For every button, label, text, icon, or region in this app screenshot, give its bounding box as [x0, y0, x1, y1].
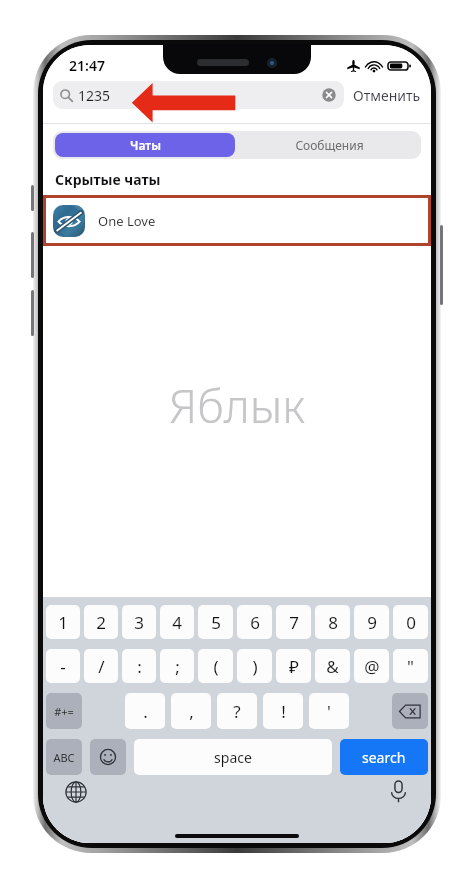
staticText: 7 — [289, 611, 299, 634]
staticText: 9 — [367, 611, 377, 634]
button[interactable]: search — [340, 739, 428, 775]
button[interactable]: . — [125, 693, 165, 729]
staticText: @ — [364, 655, 380, 678]
button[interactable]: ? — [217, 693, 257, 729]
button[interactable]: / — [84, 649, 118, 683]
button[interactable]: 8 — [315, 605, 350, 639]
staticText: ₽ — [289, 655, 299, 678]
staticText: ; — [175, 655, 180, 678]
staticText: ( — [213, 655, 219, 678]
button[interactable]: ( — [198, 649, 233, 683]
button[interactable]: Dictation — [390, 780, 407, 803]
staticText: Отменить — [353, 86, 421, 105]
button[interactable]: ₽ — [276, 649, 311, 683]
button[interactable]: 7 — [276, 605, 311, 639]
button[interactable]: ! — [263, 693, 303, 729]
button[interactable]: 5 — [198, 605, 233, 639]
staticText: ' — [327, 700, 331, 723]
staticText: Сообщения — [295, 137, 364, 153]
staticText: Скрытые чаты — [55, 170, 161, 189]
button[interactable]: 3 — [122, 605, 156, 639]
button[interactable]: 1 — [46, 605, 80, 639]
staticText: Чаты — [130, 137, 161, 153]
button[interactable]: Backspace — [392, 693, 428, 729]
staticText: ) — [252, 655, 258, 678]
staticText: Яблык — [169, 374, 306, 437]
button[interactable]: 4 — [160, 605, 194, 639]
button[interactable]: Чаты — [55, 133, 235, 157]
button[interactable]: Сообщения — [237, 131, 421, 159]
staticText: ABC — [53, 750, 75, 765]
staticText: search — [362, 748, 406, 767]
staticText: / — [98, 655, 105, 678]
staticText: " — [407, 655, 414, 678]
staticText: 1 — [58, 611, 68, 634]
staticText: , — [189, 700, 194, 723]
button[interactable]: Clear — [321, 87, 337, 103]
button[interactable]: Emoji — [90, 739, 126, 775]
button[interactable]: space — [134, 739, 332, 775]
button[interactable]: & — [315, 649, 350, 683]
staticText: #+= — [54, 704, 74, 719]
staticText: One Love — [98, 212, 156, 230]
button[interactable]: #+= — [46, 693, 82, 729]
button[interactable]: ' — [309, 693, 349, 729]
staticText: - — [60, 655, 66, 678]
staticText: 3 — [134, 611, 144, 634]
staticText: space — [214, 748, 252, 767]
button[interactable]: " — [393, 649, 428, 683]
button[interactable]: One Love — [53, 195, 431, 246]
button[interactable]: Отменить — [353, 86, 421, 105]
button[interactable]: Language — [65, 781, 87, 803]
staticText: 0 — [406, 611, 416, 634]
button[interactable]: , — [171, 693, 211, 729]
button[interactable]: : — [122, 649, 156, 683]
staticText: 8 — [328, 611, 338, 634]
button[interactable]: ; — [160, 649, 194, 683]
button[interactable]: 0 — [393, 605, 428, 639]
staticText: 6 — [250, 611, 260, 634]
button[interactable]: 9 — [354, 605, 389, 639]
staticText: & — [326, 655, 339, 678]
staticText: 5 — [211, 611, 221, 634]
button[interactable]: @ — [354, 649, 389, 683]
staticText: . — [143, 700, 148, 723]
staticText: 2 — [96, 611, 106, 634]
button[interactable]: ABC — [46, 739, 82, 775]
staticText: ? — [233, 700, 241, 723]
staticText: 21:47 — [69, 56, 105, 75]
button[interactable]: ) — [237, 649, 272, 683]
button[interactable]: - — [46, 649, 80, 683]
staticText: 1235 — [78, 86, 111, 105]
staticText: 4 — [172, 611, 182, 634]
staticText: ! — [281, 700, 286, 723]
staticText: : — [137, 655, 142, 678]
button[interactable]: 1235 — [53, 81, 344, 109]
button[interactable]: 6 — [237, 605, 272, 639]
button[interactable]: 2 — [84, 605, 118, 639]
